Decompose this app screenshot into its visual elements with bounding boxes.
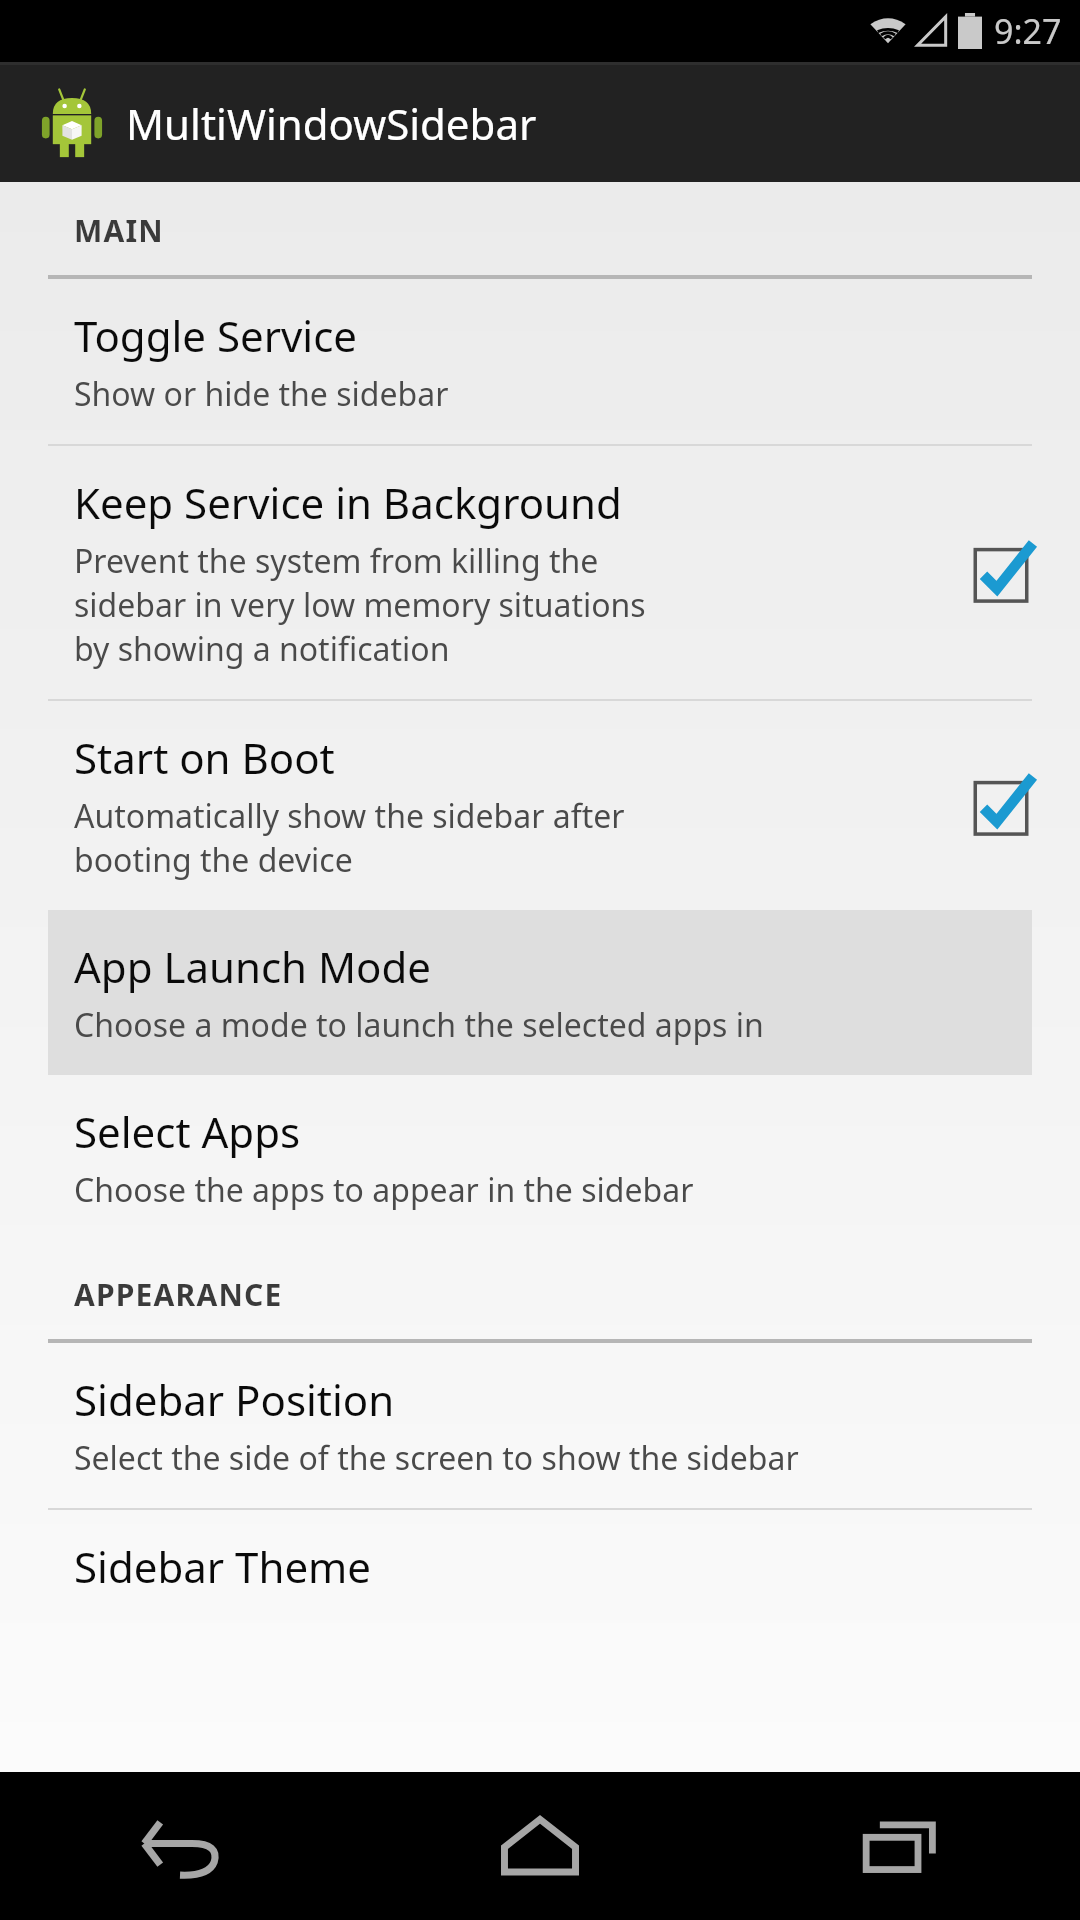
staticText: booting the device [74, 838, 353, 882]
button[interactable]: App Launch Mode [48, 910, 1032, 1075]
button[interactable]: Select Apps [0, 1075, 1080, 1240]
staticText: Sidebar Theme [74, 1538, 372, 1595]
staticText: APPEARANCE [74, 1274, 283, 1315]
button[interactable]: Recent apps [720, 1772, 1080, 1920]
button[interactable]: Sidebar Theme [0, 1510, 1080, 1623]
staticText: Choose a mode to launch the selected app… [74, 1003, 764, 1047]
staticText: Toggle Service [74, 307, 358, 364]
staticText: MultiWindowSidebar [126, 95, 537, 152]
staticText: 9:27 [994, 8, 1062, 54]
staticText: Choose the apps to appear in the sidebar [74, 1168, 694, 1212]
staticText: sidebar in very low memory situations [74, 583, 646, 627]
button[interactable]: Sidebar Position [0, 1343, 1080, 1508]
button[interactable]: Home [360, 1772, 720, 1920]
staticText: App Launch Mode [74, 938, 431, 995]
button[interactable]: Keep Service in Background [0, 446, 1080, 699]
staticText: Sidebar Position [74, 1371, 395, 1428]
staticText: by showing a notification [74, 627, 450, 671]
staticText: Select the side of the screen to show th… [74, 1436, 799, 1480]
staticText: MAIN [74, 210, 164, 251]
button[interactable]: Start on Boot [0, 701, 1080, 910]
staticText: Show or hide the sidebar [74, 372, 449, 416]
button[interactable]: Toggle Service [0, 279, 1080, 444]
staticText: Prevent the system from killing the [74, 539, 599, 583]
staticText: Select Apps [74, 1103, 301, 1160]
button[interactable]: Back [0, 1772, 360, 1920]
staticText: Automatically show the sidebar after [74, 794, 625, 838]
staticText: Start on Boot [74, 729, 335, 786]
staticText: Keep Service in Background [74, 474, 622, 531]
